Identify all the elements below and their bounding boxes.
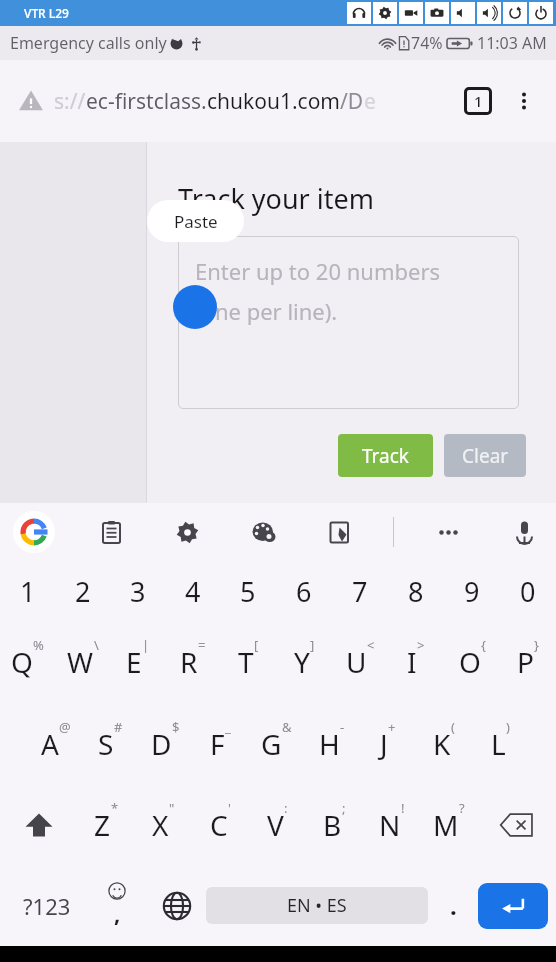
button[interactable]: Emoji and comma (86, 865, 148, 946)
button[interactable]: F (193, 703, 248, 784)
button[interactable]: 0 (500, 561, 556, 621)
button[interactable]: 7 (332, 561, 388, 621)
staticText: & (282, 718, 292, 736)
button[interactable]: Rotate (503, 2, 527, 24)
staticText: H (319, 725, 340, 763)
button[interactable]: Voice input (502, 510, 546, 554)
staticText: ( (451, 718, 455, 736)
staticText: : (284, 799, 288, 817)
staticText: F (210, 725, 225, 763)
button[interactable]: H (304, 703, 360, 784)
button[interactable]: 2 (55, 561, 110, 621)
button[interactable]: I (388, 621, 444, 703)
button[interactable]: s:// (54, 87, 454, 116)
button[interactable]: Headphones (347, 2, 371, 24)
button[interactable]: U (332, 621, 388, 703)
button[interactable]: Volume down (451, 2, 475, 24)
button[interactable]: Settings (373, 2, 397, 24)
button[interactable]: V (249, 784, 306, 865)
button[interactable]: E (110, 621, 165, 703)
button[interactable]: J (360, 703, 416, 784)
staticText: @ (59, 718, 71, 736)
button[interactable]: A (28, 703, 83, 784)
staticText: (one per line). (195, 296, 338, 326)
button[interactable]: Enter up to 20 numbers (178, 236, 519, 409)
button[interactable]: Google search (10, 508, 58, 556)
button[interactable]: M (420, 784, 477, 865)
button[interactable]: Backspace (477, 784, 556, 865)
staticText: Clear (462, 443, 509, 469)
button[interactable]: EN • ES (206, 887, 428, 924)
button[interactable]: Shift (0, 784, 78, 865)
button[interactable]: P (500, 621, 556, 703)
button[interactable]: Site information, not secure (14, 84, 48, 118)
button[interactable]: K (416, 703, 472, 784)
staticText: X (152, 806, 169, 844)
staticText: T (238, 643, 254, 681)
staticText: } (534, 636, 539, 654)
button[interactable]: Q (0, 621, 55, 703)
staticText: % (33, 636, 44, 654)
button[interactable]: D (138, 703, 193, 784)
button[interactable]: 8 (388, 561, 444, 621)
button[interactable]: S (83, 703, 138, 784)
button[interactable]: Clear (444, 434, 526, 477)
staticText: L (491, 725, 506, 763)
staticText: . (450, 889, 457, 922)
button[interactable]: Clipboard (89, 510, 133, 554)
button[interactable]: T (220, 621, 276, 703)
staticText: V (267, 806, 284, 844)
button[interactable]: Handwriting (317, 510, 361, 554)
button[interactable]: Change language (148, 865, 206, 946)
button[interactable]: Y (276, 621, 332, 703)
button[interactable]: Power (529, 2, 553, 24)
staticText: Y (294, 643, 310, 681)
button[interactable]: More keyboard options (426, 510, 470, 554)
button[interactable]: Volume up (477, 2, 501, 24)
staticText: = (198, 636, 206, 654)
button[interactable]: W (55, 621, 110, 703)
button[interactable]: 3 (110, 561, 165, 621)
button[interactable]: N (363, 784, 420, 865)
button[interactable]: Keyboard settings (165, 510, 209, 554)
staticText: U (346, 643, 367, 681)
button[interactable]: Z (78, 784, 135, 865)
staticText: \ (94, 636, 99, 654)
staticText: 3 (130, 573, 146, 610)
staticText: 9 (464, 573, 480, 610)
button[interactable]: 9 (444, 561, 500, 621)
button[interactable]: X (135, 784, 192, 865)
button[interactable]: Track (338, 434, 433, 477)
staticText: A (41, 725, 59, 763)
button[interactable]: Screenshot (425, 2, 449, 24)
button[interactable]: B (306, 784, 363, 865)
button[interactable]: L (472, 703, 528, 784)
button[interactable]: More options (506, 83, 542, 119)
staticText: _ (225, 718, 231, 736)
staticText: Track your item (178, 180, 374, 217)
button[interactable]: Enter (478, 883, 548, 929)
staticText: Emergency calls only (10, 32, 167, 54)
button[interactable]: Switch tabs, 1 open tab (458, 81, 498, 121)
button[interactable]: Themes (241, 510, 285, 554)
staticText: /D (340, 87, 364, 116)
button[interactable]: 6 (276, 561, 332, 621)
button[interactable]: G (248, 703, 304, 784)
button[interactable]: C (192, 784, 249, 865)
staticText: 4 (185, 573, 201, 610)
button[interactable]: 5 (220, 561, 276, 621)
staticText: Q (11, 643, 33, 681)
button[interactable]: . (428, 865, 478, 946)
button[interactable]: ?123 (8, 865, 86, 946)
staticText: R (180, 643, 198, 681)
button[interactable]: 4 (165, 561, 220, 621)
staticText: N (379, 806, 401, 844)
button[interactable]: R (165, 621, 220, 703)
button[interactable]: Record video (399, 2, 423, 24)
staticText: ; (342, 799, 346, 817)
button[interactable]: Paste (147, 200, 244, 242)
button[interactable]: 1 (0, 561, 55, 621)
staticText: - (340, 718, 345, 736)
staticText: M (433, 806, 459, 844)
button[interactable]: O (444, 621, 500, 703)
